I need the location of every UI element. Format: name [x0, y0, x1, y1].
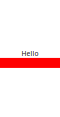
staticText: Hello: [21, 49, 38, 58]
